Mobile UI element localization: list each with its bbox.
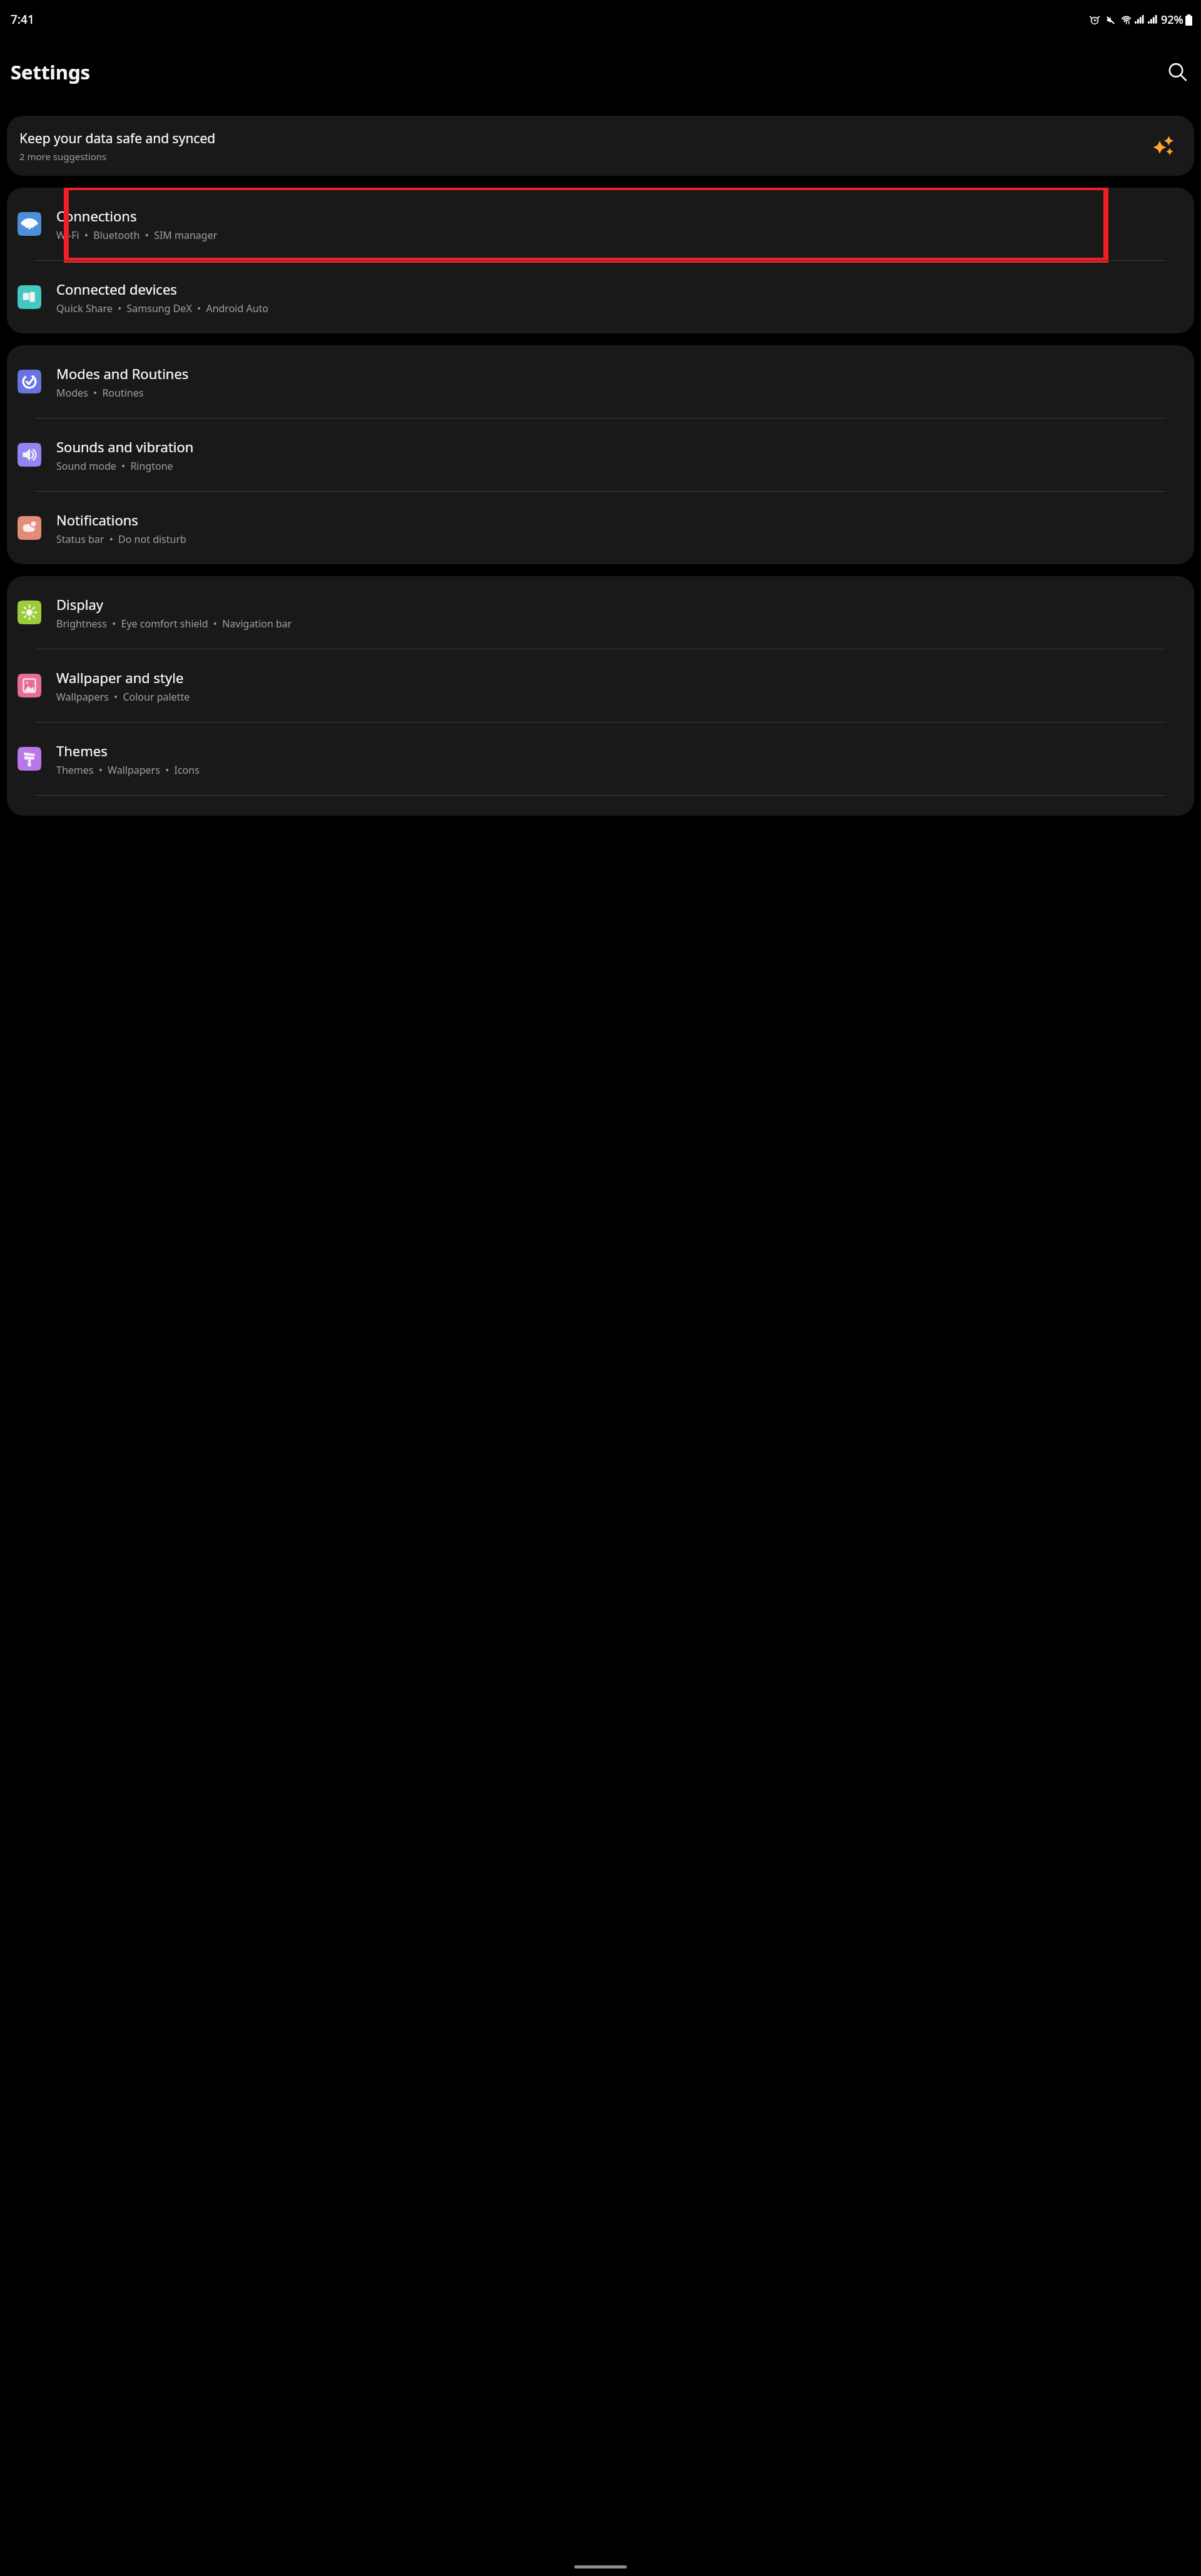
staticText: Status bar • Do not disturb bbox=[56, 532, 186, 546]
staticText: Themes • Wallpapers • Icons bbox=[56, 763, 200, 777]
staticText: Sound mode • Ringtone bbox=[56, 459, 173, 473]
button[interactable]: Themes bbox=[7, 723, 1194, 795]
staticText: Settings bbox=[11, 59, 91, 85]
button[interactable]: Keep your data safe and synced bbox=[7, 116, 1194, 176]
staticText: Modes • Routines bbox=[56, 386, 144, 400]
button[interactable]: Connections bbox=[7, 188, 1194, 260]
staticText: 2 more suggestions bbox=[19, 150, 107, 163]
button[interactable]: Sounds and vibration bbox=[7, 418, 1194, 491]
staticText: 92% bbox=[1161, 12, 1183, 28]
staticText: Modes and Routines bbox=[56, 364, 189, 383]
button[interactable]: Connected devices bbox=[7, 261, 1194, 333]
staticText: 7:41 bbox=[11, 11, 34, 28]
button[interactable]: Modes and Routines bbox=[7, 345, 1194, 418]
staticText: Brightness • Eye comfort shield • Naviga… bbox=[56, 617, 292, 631]
button[interactable]: Wallpaper and style bbox=[7, 649, 1194, 722]
staticText: Quick Share • Samsung DeX • Android Auto bbox=[56, 302, 269, 315]
button[interactable]: Display bbox=[7, 576, 1194, 649]
button[interactable]: Search bbox=[1161, 56, 1193, 88]
staticText: Keep your data safe and synced bbox=[19, 129, 216, 148]
button[interactable]: Notifications bbox=[7, 492, 1194, 564]
staticText: Wallpaper and style bbox=[56, 668, 184, 687]
staticText: Connections bbox=[56, 206, 137, 225]
staticText: Sounds and vibration bbox=[56, 437, 194, 456]
staticText: Display bbox=[56, 595, 104, 614]
staticText: Wallpapers • Colour palette bbox=[56, 690, 190, 704]
staticText: Wi-Fi • Bluetooth • SIM manager bbox=[56, 228, 218, 242]
staticText: Themes bbox=[56, 741, 108, 760]
staticText: Notifications bbox=[56, 510, 138, 529]
staticText: Connected devices bbox=[56, 280, 177, 298]
